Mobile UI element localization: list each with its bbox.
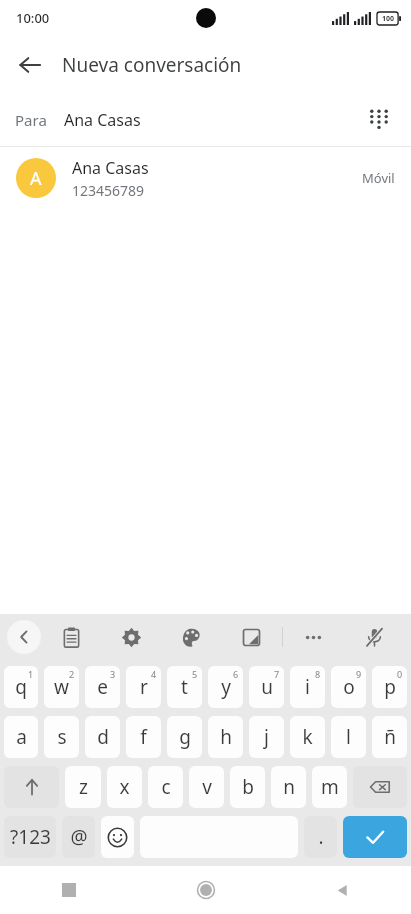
staticText: m: [321, 774, 339, 800]
staticText: 3: [110, 668, 116, 680]
staticText: Nueva conversación: [62, 52, 242, 78]
staticText: Móvil: [362, 169, 395, 187]
staticText: y: [221, 674, 231, 700]
staticText: 0: [397, 668, 403, 680]
staticText: i: [305, 674, 310, 700]
button[interactable]: y: [208, 666, 243, 708]
button[interactable]: Backspace: [353, 766, 407, 808]
button[interactable]: b: [230, 766, 265, 808]
button[interactable]: d: [85, 716, 120, 758]
button[interactable]: o: [331, 666, 366, 708]
staticText: n: [283, 774, 295, 800]
staticText: 100: [382, 14, 395, 24]
button[interactable]: s: [44, 716, 79, 758]
button[interactable]: w: [44, 666, 79, 708]
button[interactable]: l: [331, 716, 366, 758]
staticText: l: [346, 724, 351, 750]
staticText: q: [15, 674, 27, 700]
button[interactable]: a: [4, 716, 38, 758]
button[interactable]: h: [208, 716, 243, 758]
button[interactable]: Resize keyboard: [221, 614, 282, 660]
button[interactable]: ñ: [372, 716, 407, 758]
staticText: 8: [315, 668, 321, 680]
staticText: p: [384, 674, 396, 700]
button[interactable]: n: [271, 766, 306, 808]
staticText: 123456789: [72, 181, 145, 200]
staticText: h: [220, 724, 232, 750]
staticText: 9: [356, 668, 362, 680]
button[interactable]: Theme: [161, 614, 221, 660]
button[interactable]: Back: [8, 43, 52, 87]
button[interactable]: Settings: [101, 614, 161, 660]
staticText: Ana Casas: [64, 109, 141, 131]
button[interactable]: z: [65, 766, 101, 808]
button[interactable]: p: [372, 666, 407, 708]
staticText: 5: [192, 668, 198, 680]
staticText: u: [261, 674, 273, 700]
staticText: 7: [274, 668, 280, 680]
staticText: z: [79, 774, 88, 800]
staticText: j: [264, 724, 269, 750]
button[interactable]: r: [126, 666, 161, 708]
staticText: b: [242, 774, 254, 800]
staticText: 10:00: [16, 9, 50, 27]
staticText: a: [16, 724, 27, 750]
button[interactable]: Voice input off: [344, 614, 405, 660]
button[interactable]: Clipboard: [41, 614, 101, 660]
staticText: r: [140, 674, 148, 700]
staticText: .: [318, 824, 324, 850]
button[interactable]: Home: [137, 866, 274, 914]
staticText: A: [30, 166, 42, 191]
button[interactable]: Emoji: [101, 816, 134, 858]
staticText: 1: [28, 668, 34, 680]
staticText: g: [179, 724, 191, 750]
button[interactable]: More options: [283, 614, 344, 660]
button[interactable]: t: [167, 666, 202, 708]
button[interactable]: ?123: [4, 816, 56, 858]
button[interactable]: v: [189, 766, 224, 808]
staticText: w: [54, 674, 69, 700]
staticText: 6: [233, 668, 239, 680]
button[interactable]: g: [167, 716, 202, 758]
button[interactable]: Dialpad: [357, 98, 401, 142]
staticText: d: [97, 724, 109, 750]
button[interactable]: .: [304, 816, 337, 858]
staticText: ?123: [10, 824, 51, 850]
button[interactable]: u: [249, 666, 284, 708]
button[interactable]: Send: [343, 816, 407, 858]
staticText: 4: [151, 668, 157, 680]
staticText: t: [181, 674, 188, 700]
staticText: k: [302, 724, 313, 750]
button[interactable]: c: [148, 766, 183, 808]
staticText: e: [97, 674, 108, 700]
staticText: c: [161, 774, 171, 800]
button[interactable]: Shift: [4, 766, 59, 808]
staticText: ñ: [384, 724, 396, 750]
button[interactable]: Hide keyboard: [7, 620, 41, 654]
button[interactable]: m: [312, 766, 347, 808]
staticText: o: [343, 674, 355, 700]
button[interactable]: j: [249, 716, 284, 758]
staticText: s: [57, 724, 67, 750]
button[interactable]: x: [107, 766, 142, 808]
staticText: Ana Casas: [72, 157, 149, 179]
button[interactable]: @: [62, 816, 95, 858]
staticText: v: [202, 774, 212, 800]
button[interactable]: f: [126, 716, 161, 758]
staticText: x: [119, 774, 130, 800]
button[interactable]: Recent apps: [0, 866, 137, 914]
staticText: Para: [15, 110, 47, 130]
button[interactable]: k: [290, 716, 325, 758]
button[interactable]: i: [290, 666, 325, 708]
button[interactable]: A: [0, 147, 411, 209]
button[interactable]: Back: [274, 866, 411, 914]
staticText: @: [70, 824, 88, 850]
staticText: f: [140, 724, 147, 750]
button[interactable]: e: [85, 666, 120, 708]
button[interactable]: q: [4, 666, 38, 708]
staticText: 2: [69, 668, 75, 680]
